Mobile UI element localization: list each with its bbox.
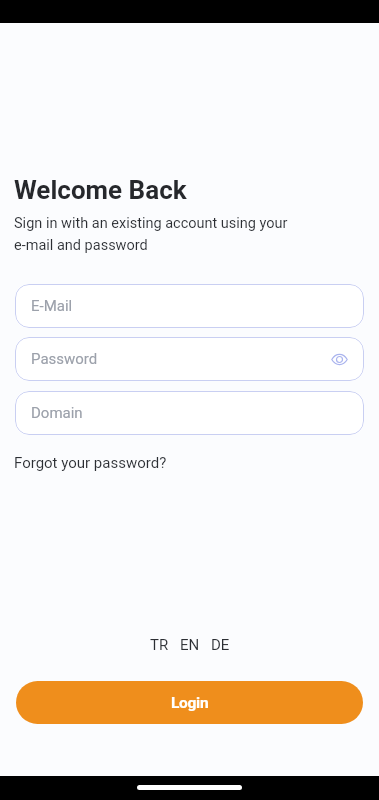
staticText: Login: [171, 694, 209, 712]
staticText: Welcome Back: [14, 175, 187, 205]
button[interactable]: Forgot your password?: [14, 454, 167, 472]
staticText: Domain: [31, 404, 83, 422]
staticText: Sign in with an existing account using y…: [14, 215, 288, 254]
button[interactable]: EN: [180, 636, 200, 654]
staticText: Password: [31, 350, 98, 368]
button[interactable]: E-Mail: [15, 284, 364, 328]
button[interactable]: Password: [15, 337, 364, 381]
staticText: E-Mail: [31, 297, 73, 315]
button[interactable]: TR: [150, 636, 169, 654]
button[interactable]: Domain: [15, 391, 364, 435]
button[interactable]: Login: [16, 681, 363, 724]
button[interactable]: DE: [211, 636, 230, 654]
